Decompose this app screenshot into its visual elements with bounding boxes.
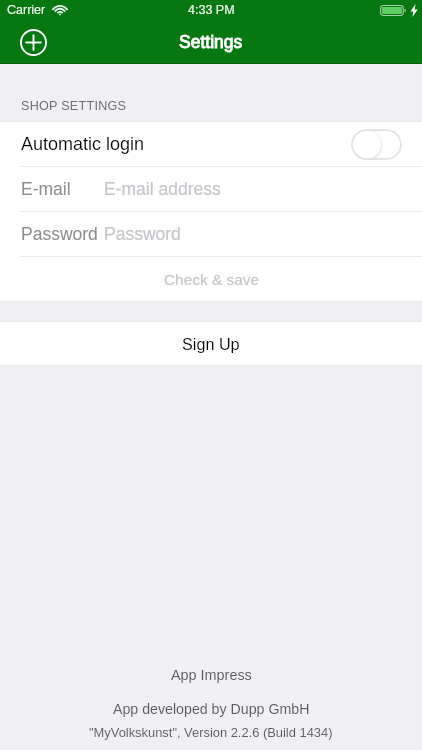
staticText: Sign Up xyxy=(182,335,240,353)
staticText: 4:33 PM xyxy=(188,3,235,17)
staticText: E-mail xyxy=(21,179,104,199)
button[interactable]: Add xyxy=(12,21,55,64)
staticText: SHOP SETTINGS xyxy=(21,99,127,113)
button[interactable]: Automatic login toggle xyxy=(351,129,402,160)
staticText: Check & save xyxy=(164,271,259,288)
button[interactable]: E-mail xyxy=(0,167,422,211)
button[interactable]: Sign Up xyxy=(0,322,422,365)
staticText: App developed by Dupp GmbH xyxy=(113,701,310,717)
button[interactable]: Password xyxy=(0,212,422,256)
staticText: E-mail address xyxy=(104,179,221,199)
staticText: App Impress xyxy=(171,667,252,683)
staticText: Password xyxy=(21,224,104,244)
staticText: Settings xyxy=(179,32,243,52)
staticText: Password xyxy=(104,224,181,244)
staticText: Carrier xyxy=(7,3,46,17)
button[interactable]: App Impress xyxy=(157,664,266,686)
staticText: Automatic login xyxy=(21,134,145,154)
button[interactable]: Automatic login xyxy=(0,122,422,166)
staticText: "MyVolkskunst", Version 2.2.6 (Build 143… xyxy=(89,725,333,739)
button[interactable]: Check & save xyxy=(0,257,422,301)
